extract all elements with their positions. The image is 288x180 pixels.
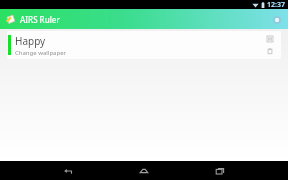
button[interactable]: Happy <box>7 31 281 59</box>
staticText: 12:37 <box>267 0 285 9</box>
button[interactable]: Recents <box>207 161 233 180</box>
staticText: Happy <box>15 34 46 48</box>
staticText: AIRS Ruler <box>20 14 60 25</box>
button[interactable]: Delete <box>265 46 275 56</box>
staticText: Change wallpaper <box>15 49 66 57</box>
button[interactable]: Home <box>131 161 157 180</box>
button[interactable]: Back <box>55 161 81 180</box>
button[interactable]: Pause <box>265 34 275 44</box>
button[interactable]: Info <box>270 13 283 26</box>
